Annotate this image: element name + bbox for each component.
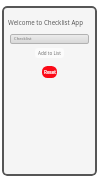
staticText: Reset: [44, 69, 56, 75]
button[interactable]: Checklist: [10, 34, 89, 44]
staticText: Welcome to Checklist App: [8, 18, 83, 26]
staticText: Checklist: [14, 36, 32, 42]
button[interactable]: Add to List: [35, 48, 64, 58]
staticText: Add to List: [38, 50, 61, 56]
button[interactable]: Reset: [42, 66, 57, 78]
